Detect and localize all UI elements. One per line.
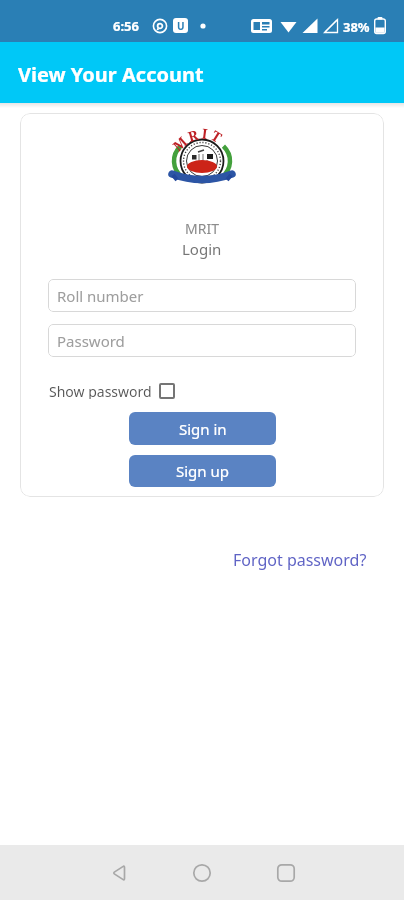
button[interactable]: Show password <box>49 382 175 399</box>
button[interactable] <box>106 859 134 887</box>
staticText: Forgot password? <box>233 549 367 571</box>
button[interactable]: Forgot password? <box>233 548 367 572</box>
staticText: Roll number <box>57 286 144 306</box>
staticText: M <box>168 132 191 155</box>
staticText: 38% <box>343 18 370 36</box>
button[interactable] <box>272 859 300 887</box>
staticText: View Your Account <box>18 61 204 88</box>
staticText: U <box>177 19 185 33</box>
staticText: Password <box>57 331 125 351</box>
staticText: I <box>201 124 209 143</box>
staticText: T <box>208 126 226 147</box>
staticText: R <box>186 125 200 146</box>
button[interactable]: Sign in <box>129 412 276 445</box>
staticText: 6:56 <box>113 17 139 35</box>
staticText: Show password <box>49 382 152 399</box>
button[interactable]: Sign up <box>129 455 276 487</box>
button[interactable]: Roll number <box>48 279 356 312</box>
staticText: Sign up <box>176 461 229 481</box>
button[interactable]: Password <box>48 324 356 357</box>
staticText: Sign in <box>179 419 227 439</box>
staticText: Login <box>182 239 222 259</box>
button[interactable] <box>188 859 216 887</box>
staticText: MRIT <box>185 219 219 238</box>
